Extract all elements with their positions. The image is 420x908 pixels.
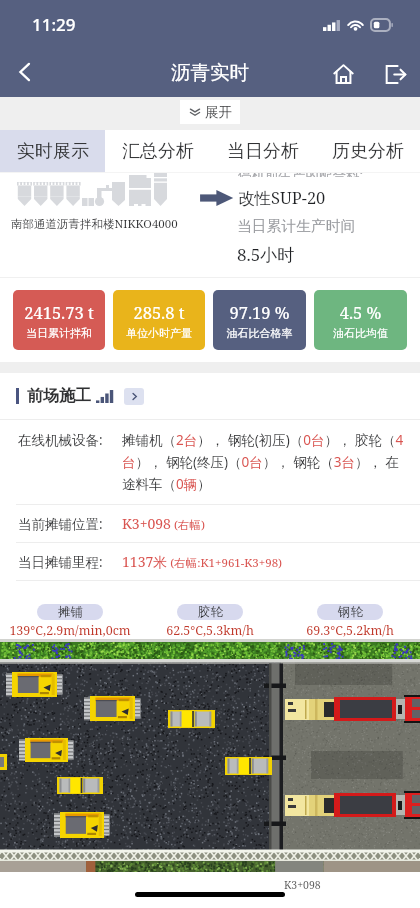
staticText: 139°C,2.9m/min,0cm — [0, 622, 140, 639]
staticText: 展开 — [205, 104, 232, 121]
button[interactable]: 展开 — [180, 100, 240, 124]
button[interactable]: Home — [319, 50, 367, 98]
staticText: 历史分析 — [332, 140, 404, 163]
button[interactable]: 实时展示 — [0, 130, 105, 172]
staticText: 胶轮 — [198, 604, 223, 620]
staticText: 汇总分析 — [122, 140, 194, 163]
staticText: 2415.73 t — [13, 301, 105, 323]
staticText: 油石比合格率 — [213, 326, 306, 340]
staticText: K3+098 (右幅) — [122, 514, 205, 533]
staticText: 285.8 t — [113, 301, 205, 323]
staticText: 在线机械设备: — [18, 431, 122, 449]
staticText: 实时展示 — [17, 140, 89, 163]
staticText: 69.3°C,5.2km/h — [280, 622, 420, 639]
button[interactable]: 4.5 % — [314, 290, 407, 350]
staticText: 南部通道沥青拌和楼NIKKO4000 — [11, 216, 178, 232]
button[interactable]: 2415.73 t — [13, 290, 105, 350]
staticText: 停机前生产的配合料: — [238, 173, 364, 177]
staticText: 11:29 — [32, 13, 76, 36]
button[interactable]: 历史分析 — [315, 130, 420, 172]
staticText: 8.5小时 — [237, 243, 295, 266]
staticText: 单位小时产量 — [113, 326, 205, 340]
button[interactable]: Logout — [374, 53, 416, 95]
staticText: K3+098 — [284, 878, 321, 892]
staticText: 摊铺 — [58, 604, 83, 620]
staticText: 沥青实时 — [171, 60, 249, 85]
button[interactable]: Back — [4, 51, 46, 93]
staticText: 4.5 % — [314, 301, 407, 323]
staticText: 钢轮 — [338, 604, 363, 620]
staticText: 当日摊铺里程: — [18, 553, 122, 571]
staticText: 当日累计拌和 — [13, 326, 105, 340]
button[interactable]: 285.8 t — [113, 290, 205, 350]
button[interactable]: 钢轮 — [317, 604, 383, 620]
button[interactable]: 胶轮 — [177, 604, 243, 620]
staticText: 油石比均值 — [314, 326, 407, 340]
staticText: 62.5°C,5.3km/h — [140, 622, 280, 639]
button[interactable]: 汇总分析 — [105, 130, 210, 172]
staticText: 摊铺机（2台）， 钢轮(初压)（0台）， 胶轮（4台）， 钢轮(终压)（0台），… — [122, 431, 406, 493]
staticText: 当日分析 — [227, 140, 299, 163]
staticText: 当日累计生产时间 — [237, 217, 356, 236]
staticText: 97.19 % — [213, 301, 306, 323]
staticText: 改性SUP-20 — [238, 186, 326, 209]
staticText: 当前摊铺位置: — [18, 515, 122, 533]
button[interactable]: 97.19 % — [213, 290, 306, 350]
staticText: 1137米 (右幅:K1+961-K3+98) — [122, 552, 283, 571]
staticText: 前场施工 — [27, 386, 91, 406]
button[interactable]: 当日分析 — [210, 130, 315, 172]
button[interactable]: More — [124, 388, 144, 405]
button[interactable]: 摊铺 — [37, 604, 103, 620]
